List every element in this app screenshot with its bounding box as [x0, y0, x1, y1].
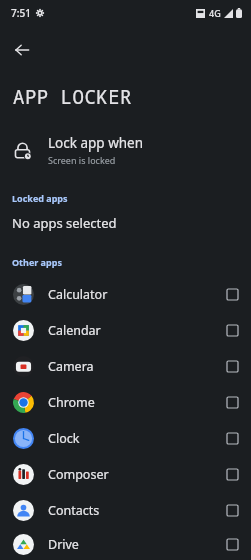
button[interactable]: Lock app when	[0, 130, 251, 170]
staticText: Screen is locked	[48, 154, 116, 166]
button[interactable]: Camera	[0, 348, 251, 384]
button[interactable]: Composer	[0, 456, 251, 492]
button[interactable]: Calendar	[0, 312, 251, 348]
staticText: Contacts	[48, 502, 227, 519]
button[interactable]: Chrome	[0, 384, 251, 420]
button[interactable]: Calculator	[0, 276, 251, 312]
staticText: Composer	[48, 466, 227, 483]
button[interactable]: Back	[4, 32, 40, 68]
staticText: Chrome	[48, 394, 227, 411]
staticText: No apps selected	[12, 214, 117, 232]
staticText: APP LOCKER	[13, 84, 133, 110]
staticText: Calendar	[48, 322, 227, 339]
button[interactable]: Drive	[0, 528, 251, 560]
staticText: 7:51	[11, 6, 31, 20]
staticText: Camera	[48, 358, 227, 375]
staticText: Calculator	[48, 286, 227, 303]
staticText: 4G	[209, 7, 221, 19]
staticText: Locked apps	[12, 192, 68, 204]
button[interactable]: Clock	[0, 420, 251, 456]
staticText: Drive	[48, 536, 227, 553]
staticText: Other apps	[12, 256, 62, 268]
staticText: Lock app when	[48, 134, 144, 152]
staticText: Clock	[48, 430, 227, 447]
button[interactable]: Contacts	[0, 492, 251, 528]
